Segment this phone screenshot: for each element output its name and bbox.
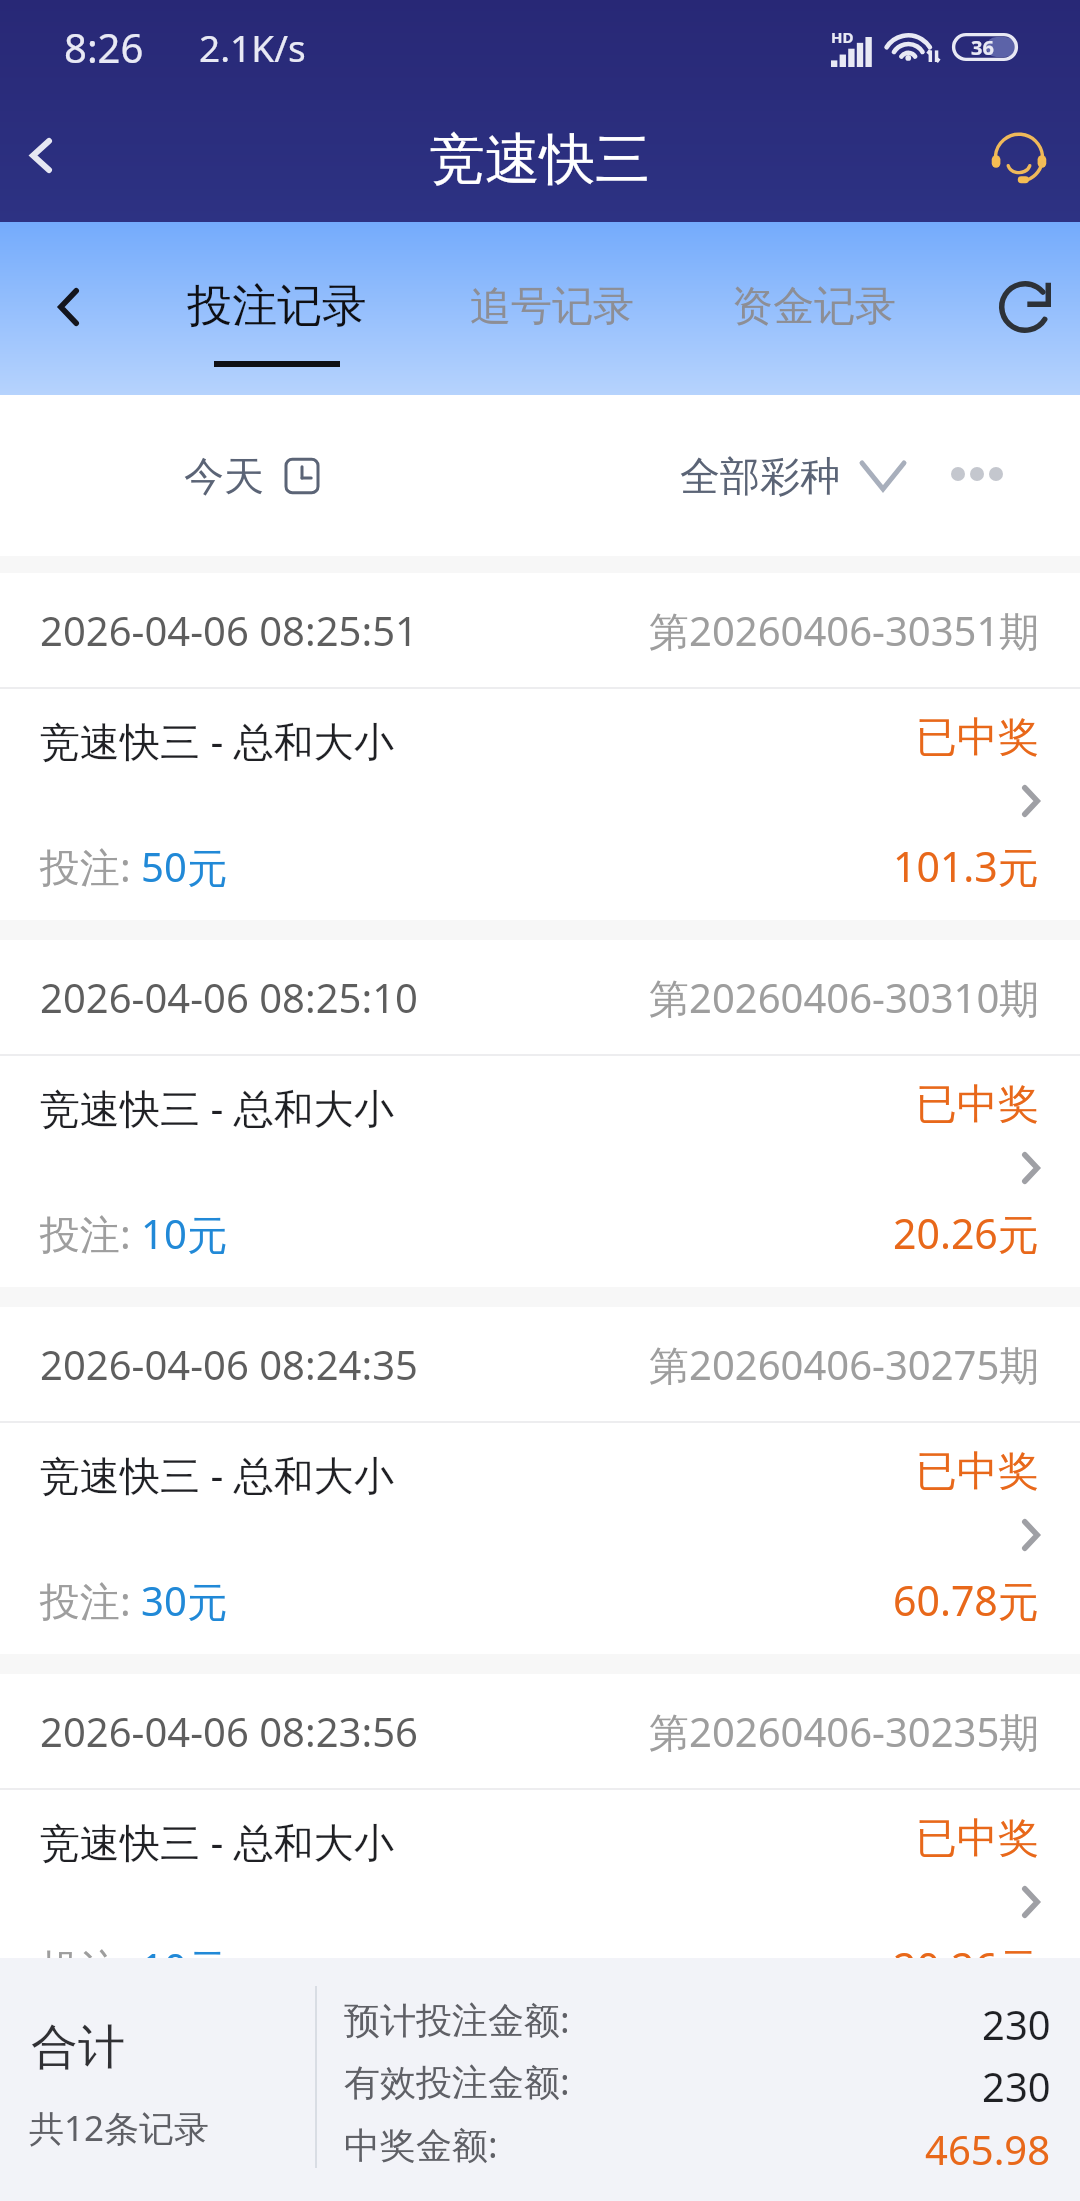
staticText: 预计投注金额:	[344, 1995, 570, 2044]
button[interactable]: 竞速快三 - 总和大小	[0, 689, 1080, 920]
staticText: 今天	[184, 451, 264, 501]
button[interactable]: More options	[931, 455, 1023, 493]
button[interactable]: 竞速快三 - 总和大小	[0, 1423, 1080, 1654]
button[interactable]: Back	[27, 266, 109, 348]
staticText: 20.26元	[893, 1205, 1039, 1261]
staticText: 2.1K/s	[199, 22, 306, 72]
staticText: 60.78元	[893, 1572, 1039, 1628]
staticText: 竞速快三	[430, 125, 650, 194]
button[interactable]: Refresh	[982, 264, 1068, 350]
staticText: 已中奖	[916, 1079, 1039, 1131]
staticText: 竞速快三 - 总和大小	[40, 713, 394, 768]
staticText: 2026-04-06 08:23:56	[40, 1704, 418, 1758]
staticText: 全部彩种	[680, 451, 840, 501]
staticText: 追号记录	[470, 281, 634, 333]
staticText: 36	[971, 34, 994, 61]
staticText: 2026-04-06 08:24:35	[40, 1337, 418, 1391]
staticText: 投注: 10元	[40, 1206, 227, 1261]
staticText: 有效投注金额:	[344, 2057, 570, 2106]
button[interactable]: Customer service	[976, 116, 1062, 202]
button[interactable]: 竞速快三 - 总和大小	[0, 1790, 1080, 1958]
staticText: 中奖金额:	[344, 2120, 498, 2169]
staticText: 第20260406-30275期	[649, 1337, 1040, 1392]
staticText: HD	[831, 27, 854, 47]
staticText: 投注: 30元	[40, 1573, 227, 1628]
staticText: 230	[982, 2059, 1051, 2113]
button[interactable]: 全部彩种	[672, 443, 912, 509]
staticText: 已中奖	[916, 712, 1039, 764]
staticText: 投注: 10元	[40, 1940, 227, 1958]
staticText: 465.98	[925, 2122, 1051, 2176]
staticText: 2026-04-06 08:25:51	[40, 603, 418, 657]
staticText: 已中奖	[916, 1813, 1039, 1865]
staticText: 230	[982, 1997, 1051, 2051]
staticText: 竞速快三 - 总和大小	[40, 1080, 394, 1135]
staticText: 第20260406-30310期	[649, 970, 1040, 1025]
staticText: 第20260406-30351期	[649, 603, 1040, 658]
staticText: 第20260406-30235期	[649, 1704, 1040, 1759]
button[interactable]: 追号记录	[440, 222, 664, 395]
staticText: 资金记录	[732, 281, 896, 333]
staticText: 竞速快三 - 总和大小	[40, 1447, 394, 1502]
staticText: 投注: 50元	[40, 839, 227, 894]
staticText: 2026-04-06 08:25:10	[40, 970, 418, 1024]
staticText: 20.26元	[893, 1939, 1039, 1958]
staticText: 投注记录	[187, 278, 367, 335]
button[interactable]: Back	[0, 96, 81, 214]
staticText: 竞速快三 - 总和大小	[40, 1814, 394, 1869]
staticText: 共12条记录	[29, 2104, 210, 2152]
button[interactable]: 今天	[176, 443, 330, 509]
staticText: 8:26	[64, 20, 144, 74]
button[interactable]: 资金记录	[702, 222, 926, 395]
button[interactable]: 竞速快三 - 总和大小	[0, 1056, 1080, 1287]
staticText: 101.3元	[893, 838, 1039, 894]
button[interactable]: 投注记录	[165, 222, 389, 395]
staticText: 已中奖	[916, 1446, 1039, 1498]
staticText: 合计	[31, 2018, 125, 2077]
